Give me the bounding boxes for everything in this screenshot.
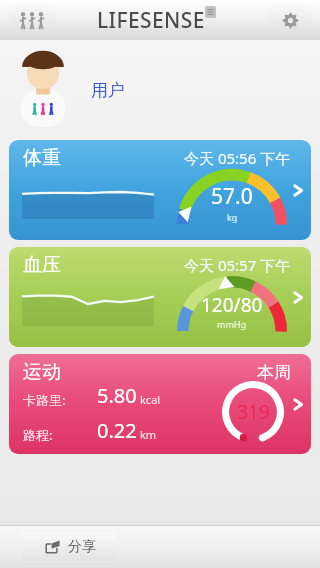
staticText: 0.22 xyxy=(97,417,137,444)
staticText: mmHg xyxy=(217,318,247,330)
staticText: 体重 xyxy=(23,146,61,170)
staticText: 运动 xyxy=(23,360,61,384)
staticText: 319 xyxy=(237,399,270,425)
staticText: 57.0 xyxy=(211,182,253,211)
staticText: km xyxy=(140,427,157,442)
staticText: 今天 05:57 下午 xyxy=(184,255,291,275)
staticText: 路程: xyxy=(23,426,53,444)
staticText: 血压 xyxy=(23,253,61,277)
button[interactable]: Family members xyxy=(9,6,55,35)
staticText: 120/80 xyxy=(201,292,263,318)
button[interactable]: 卡路里: xyxy=(9,354,311,454)
staticText: 5.80 xyxy=(97,382,137,409)
button[interactable]: 用户 xyxy=(0,40,320,140)
staticText: LIFESENSE xyxy=(97,6,205,35)
button[interactable]: Settings xyxy=(269,6,311,35)
staticText: kg xyxy=(227,211,238,223)
staticText: 用户 xyxy=(91,80,125,101)
staticText: 本周 xyxy=(257,362,291,383)
staticText: 卡路里: xyxy=(23,391,66,409)
button[interactable]: 分享 xyxy=(22,532,118,561)
button[interactable]: 57.0 xyxy=(9,140,311,240)
staticText: 今天 05:56 下午 xyxy=(184,148,291,168)
staticText: 分享 xyxy=(68,538,96,556)
staticText: kcal xyxy=(140,392,161,407)
button[interactable]: 120/80 xyxy=(9,247,311,347)
